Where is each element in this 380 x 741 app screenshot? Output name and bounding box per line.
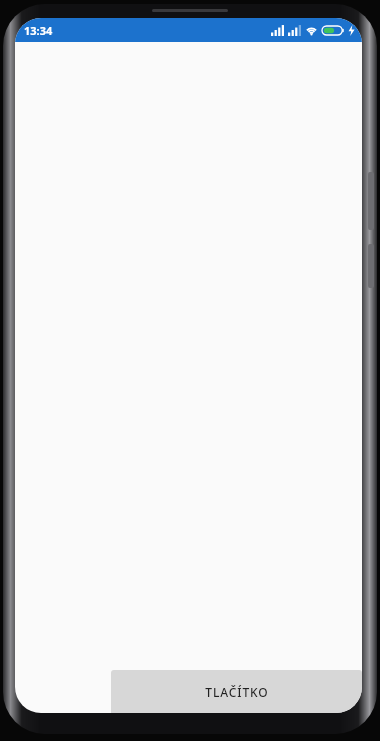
- staticText: TLAČÍTKO: [205, 684, 269, 700]
- staticText: 13:34: [24, 23, 53, 38]
- button[interactable]: TLAČÍTKO: [111, 670, 362, 713]
